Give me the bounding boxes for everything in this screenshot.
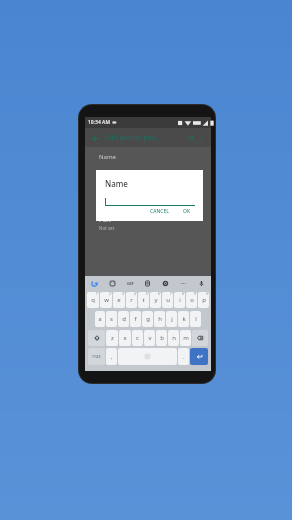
staticText: d — [122, 315, 126, 323]
staticText: v — [148, 334, 152, 342]
staticText: s — [110, 315, 113, 323]
button[interactable]: l — [190, 311, 201, 327]
button[interactable]: , — [106, 348, 117, 365]
staticText: k — [182, 315, 186, 323]
staticText: n — [172, 334, 176, 342]
staticText: 2 — [109, 292, 111, 296]
button[interactable]: b — [156, 330, 167, 346]
staticText: o — [190, 296, 194, 304]
button[interactable]: g — [142, 311, 153, 327]
button[interactable]: m — [180, 330, 191, 346]
staticText: r — [130, 296, 133, 304]
staticText: 10:34 AM — [88, 119, 110, 126]
button[interactable]: e — [113, 292, 125, 308]
button[interactable]: Search — [185, 132, 197, 144]
button[interactable]: q — [87, 292, 99, 308]
staticText: GIF — [127, 281, 134, 286]
staticText: Port — [99, 216, 111, 224]
button[interactable]: GIF — [126, 279, 135, 288]
staticText: Name — [99, 153, 116, 161]
staticText: j — [171, 315, 173, 323]
staticText: e — [117, 296, 121, 304]
staticText: 0 — [206, 292, 208, 296]
button[interactable]: CANCEL — [146, 206, 173, 216]
staticText: . — [183, 353, 185, 361]
staticText: OK — [183, 208, 191, 214]
button[interactable]: p — [198, 292, 209, 308]
button[interactable]: o — [186, 292, 197, 308]
staticText: y — [154, 296, 158, 304]
button[interactable]: f — [130, 311, 141, 327]
button[interactable]: c — [132, 330, 143, 346]
staticText: w — [104, 296, 109, 304]
staticText: l — [195, 315, 197, 323]
staticText: h — [158, 315, 162, 323]
staticText: b — [160, 334, 164, 342]
staticText: 6 — [158, 292, 160, 296]
button[interactable]: ?123 — [88, 348, 105, 365]
button[interactable]: s — [106, 311, 117, 327]
button[interactable]: a — [95, 311, 105, 327]
staticText: 9 — [194, 292, 196, 296]
button[interactable]: i — [174, 292, 185, 308]
staticText: ?123 — [92, 354, 101, 359]
button[interactable]: More options — [197, 133, 207, 143]
button[interactable]: . — [178, 348, 189, 365]
staticText: u — [166, 296, 170, 304]
button[interactable]: Settings — [161, 279, 170, 288]
staticText: i — [179, 296, 181, 304]
button[interactable]: d — [118, 311, 129, 327]
button[interactable]: Stickers — [108, 279, 117, 288]
staticText: Name — [105, 178, 128, 189]
button[interactable]: y — [150, 292, 161, 308]
staticText: 5 — [146, 292, 148, 296]
staticText: , — [111, 353, 113, 361]
button[interactable]: h — [154, 311, 165, 327]
staticText: z — [111, 334, 114, 342]
staticText: a — [98, 315, 102, 323]
button[interactable]: j — [166, 311, 177, 327]
button[interactable]: Backspace — [192, 330, 208, 346]
staticText: f — [134, 315, 137, 323]
staticText: c — [136, 334, 139, 342]
staticText: m — [183, 334, 189, 342]
staticText: CANCEL — [150, 208, 169, 214]
button[interactable]: Clipboard — [143, 279, 152, 288]
staticText: p — [202, 296, 206, 304]
button[interactable]: Voice input — [197, 279, 206, 288]
button[interactable]: Google — [90, 279, 99, 288]
staticText: Not set — [99, 225, 115, 231]
staticText: Edit access poi… — [105, 133, 160, 143]
button[interactable]: r — [126, 292, 137, 308]
staticText: x — [123, 334, 127, 342]
staticText: t — [142, 296, 145, 304]
staticText: 1 — [96, 292, 98, 296]
staticText: 7 — [170, 292, 172, 296]
button[interactable]: t — [138, 292, 149, 308]
button[interactable]: x — [119, 330, 131, 346]
button[interactable]: z — [106, 330, 118, 346]
button[interactable]: Shift — [88, 330, 105, 346]
staticText: 4 — [134, 292, 136, 296]
button[interactable]: Enter — [190, 348, 208, 365]
button[interactable]: k — [178, 311, 189, 327]
staticText: 8 — [182, 292, 184, 296]
button[interactable]: OK — [179, 206, 195, 216]
button[interactable]: Back — [89, 132, 101, 144]
button[interactable]: w — [100, 292, 112, 308]
button[interactable]: n — [168, 330, 179, 346]
staticText: 3 — [122, 292, 124, 296]
button[interactable]: v — [144, 330, 155, 346]
button[interactable]: Space — [118, 348, 177, 365]
staticText: g — [146, 315, 150, 323]
button[interactable]: More — [179, 279, 188, 288]
button[interactable]: u — [162, 292, 173, 308]
staticText: q — [91, 296, 95, 304]
